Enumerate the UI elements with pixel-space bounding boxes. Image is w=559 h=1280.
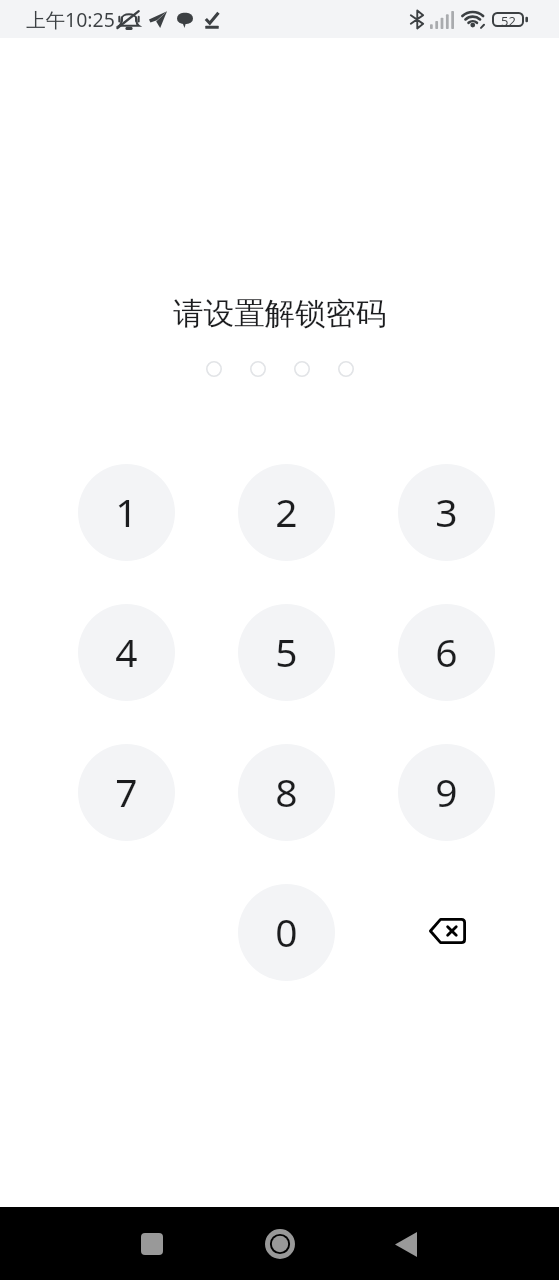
button[interactable]: Recents [128, 1220, 176, 1268]
staticText: 上午10:25 [26, 6, 115, 33]
staticText: 1 [115, 485, 138, 538]
staticText: 9 [435, 765, 458, 818]
button[interactable]: 2 [238, 464, 335, 561]
button[interactable]: 8 [238, 744, 335, 841]
staticText: 2 [275, 485, 298, 538]
staticText: 请设置解锁密码 [173, 295, 387, 333]
button[interactable]: Home [256, 1220, 304, 1268]
button[interactable]: 7 [78, 744, 175, 841]
button[interactable]: Back [382, 1220, 430, 1268]
staticText: 5 [275, 625, 298, 678]
button[interactable]: 5 [238, 604, 335, 701]
staticText: 6 [435, 625, 458, 678]
button[interactable]: 1 [78, 464, 175, 561]
staticText: 52 [501, 12, 516, 27]
staticText: 8 [275, 765, 298, 818]
staticText: 3 [435, 485, 458, 538]
button[interactable]: 9 [398, 744, 495, 841]
staticText: 7 [115, 765, 138, 818]
staticText: 4 [115, 625, 138, 678]
button[interactable]: 6 [398, 604, 495, 701]
button[interactable]: 4 [78, 604, 175, 701]
staticText: 0 [275, 905, 298, 958]
button[interactable]: 0 [238, 884, 335, 981]
button[interactable]: Backspace [398, 884, 495, 981]
button[interactable]: 3 [398, 464, 495, 561]
